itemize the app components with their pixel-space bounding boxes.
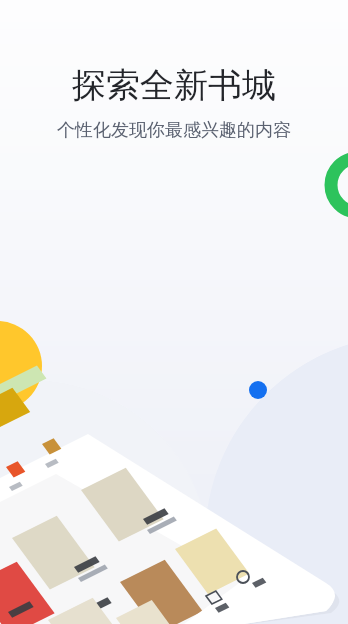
staticText: 探索全新书城	[72, 64, 276, 107]
staticText: 个性化发现你最感兴趣的内容	[57, 119, 291, 142]
